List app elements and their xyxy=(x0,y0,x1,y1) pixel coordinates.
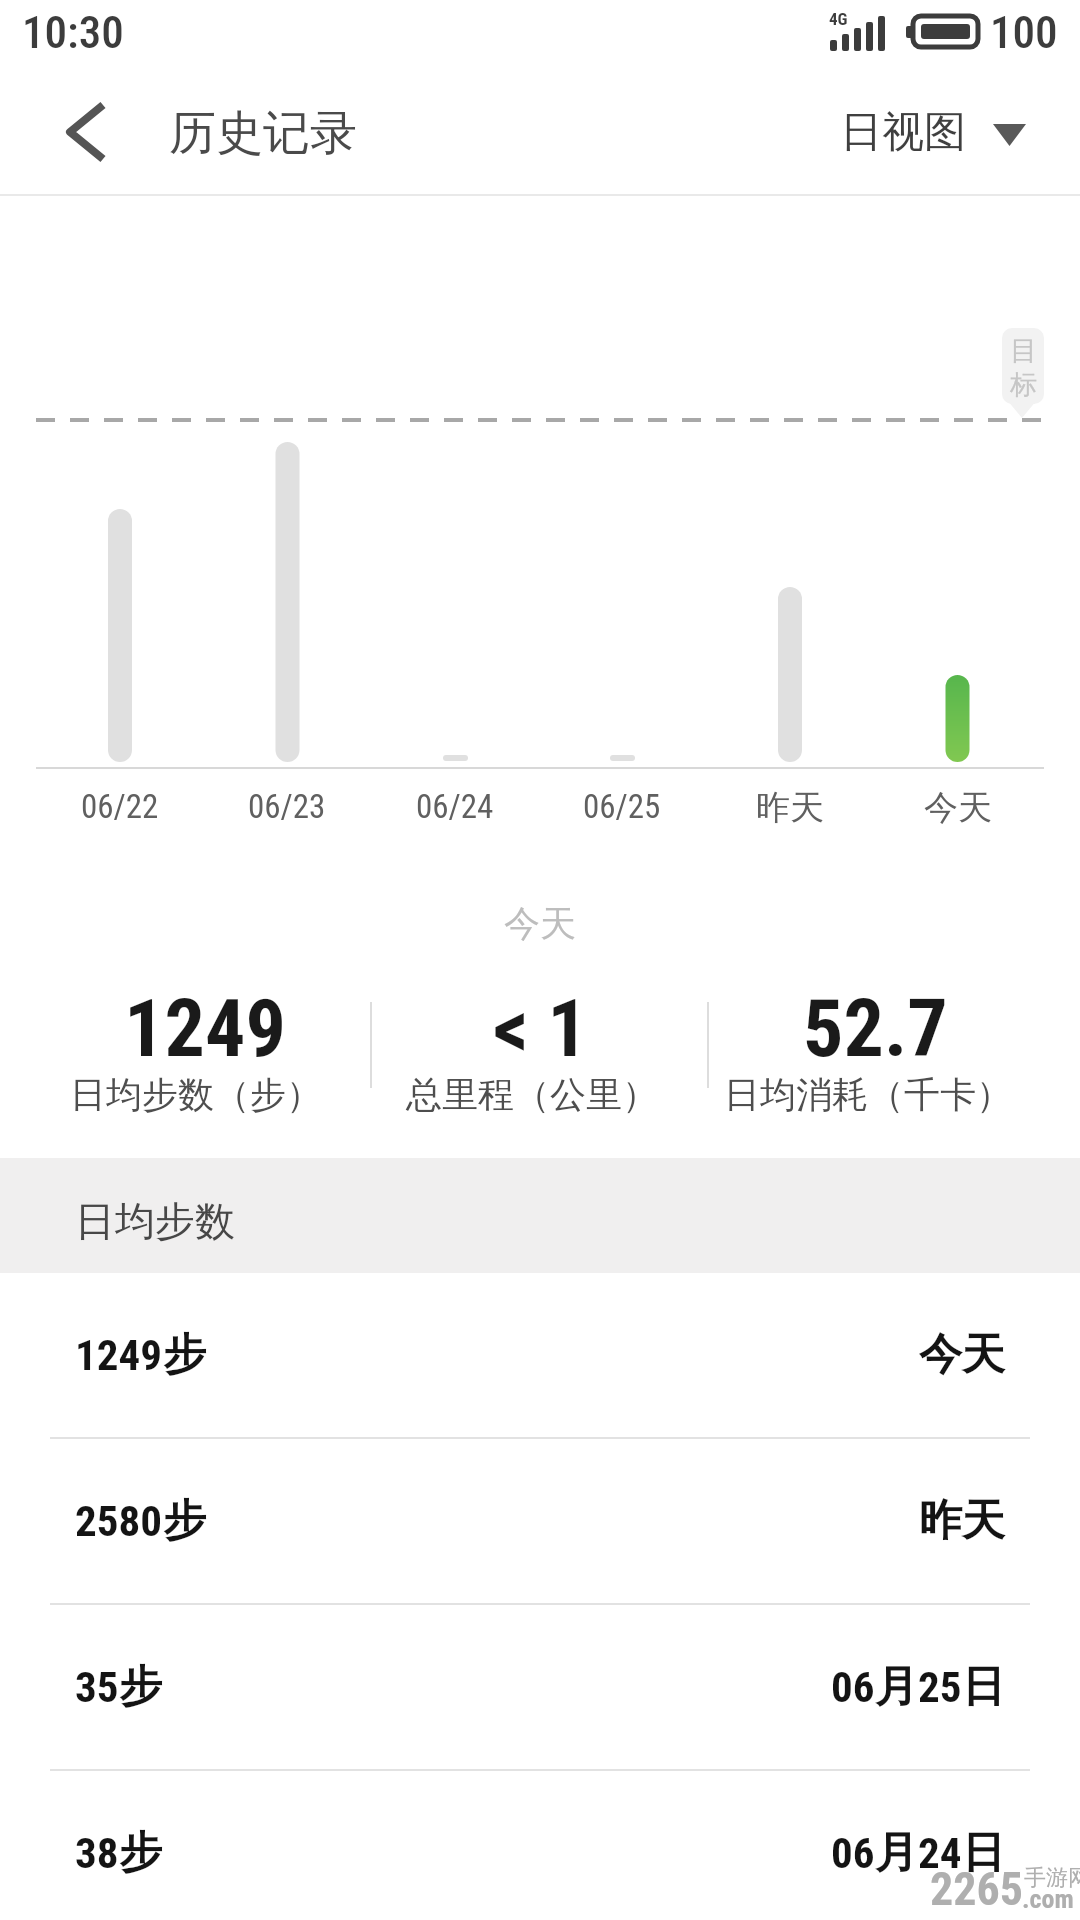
staticText: 日 xyxy=(962,1826,1005,1880)
button[interactable] xyxy=(810,92,1050,172)
staticText: 总里程（公里） xyxy=(406,1072,658,1117)
button[interactable]: 38 xyxy=(0,1771,1080,1920)
staticText: 06/23 xyxy=(248,787,326,826)
staticText: 06/22 xyxy=(81,787,159,826)
staticText: 今天 xyxy=(924,786,992,829)
staticText: 100 xyxy=(990,6,1058,59)
staticText: 历史记录 xyxy=(169,104,357,163)
staticText: 06 xyxy=(831,1662,875,1712)
staticText: 步 xyxy=(163,1494,206,1548)
staticText: 月 xyxy=(875,1660,918,1714)
staticText: 日均消耗（千卡） xyxy=(724,1072,1012,1117)
staticText: 52.7 xyxy=(803,982,948,1076)
staticText: 10:30 xyxy=(22,6,124,59)
staticText: 38 xyxy=(75,1828,119,1878)
staticText: 步 xyxy=(119,1826,162,1880)
staticText: 手游网 xyxy=(1024,1864,1080,1892)
staticText: 1249 xyxy=(124,982,286,1076)
staticText: 35 xyxy=(75,1662,119,1712)
staticText: 目 xyxy=(1010,334,1037,368)
staticText: 06 xyxy=(831,1828,875,1878)
staticText: 步 xyxy=(163,1328,206,1382)
button[interactable] xyxy=(40,92,130,172)
staticText: 日视图 xyxy=(840,106,966,159)
staticText: 标 xyxy=(1010,368,1037,402)
staticText: < 1 xyxy=(493,982,588,1076)
staticText: 今天 xyxy=(504,901,576,946)
staticText: 日均步数 xyxy=(75,1196,235,1246)
staticText: 昨天 xyxy=(756,786,824,829)
button[interactable]: 35 xyxy=(0,1605,1080,1769)
button[interactable]: 1249 xyxy=(0,1273,1080,1437)
staticText: 4G xyxy=(829,9,848,29)
staticText: 今天 xyxy=(919,1328,1005,1382)
staticText: 06/24 xyxy=(416,787,494,826)
button[interactable]: 2580 xyxy=(0,1439,1080,1603)
staticText: .com xyxy=(1022,1884,1074,1914)
staticText: 日均步数（步） xyxy=(70,1072,322,1117)
staticText: 2265 xyxy=(930,1862,1024,1916)
staticText: 月 xyxy=(875,1826,918,1880)
staticText: 06/25 xyxy=(583,787,661,826)
staticText: 25 xyxy=(918,1662,962,1712)
staticText: 2580 xyxy=(75,1496,163,1546)
staticText: 日 xyxy=(962,1660,1005,1714)
staticText: 步 xyxy=(119,1660,162,1714)
staticText: 昨天 xyxy=(919,1494,1005,1548)
staticText: 1249 xyxy=(75,1330,163,1380)
staticText: 24 xyxy=(918,1828,962,1878)
